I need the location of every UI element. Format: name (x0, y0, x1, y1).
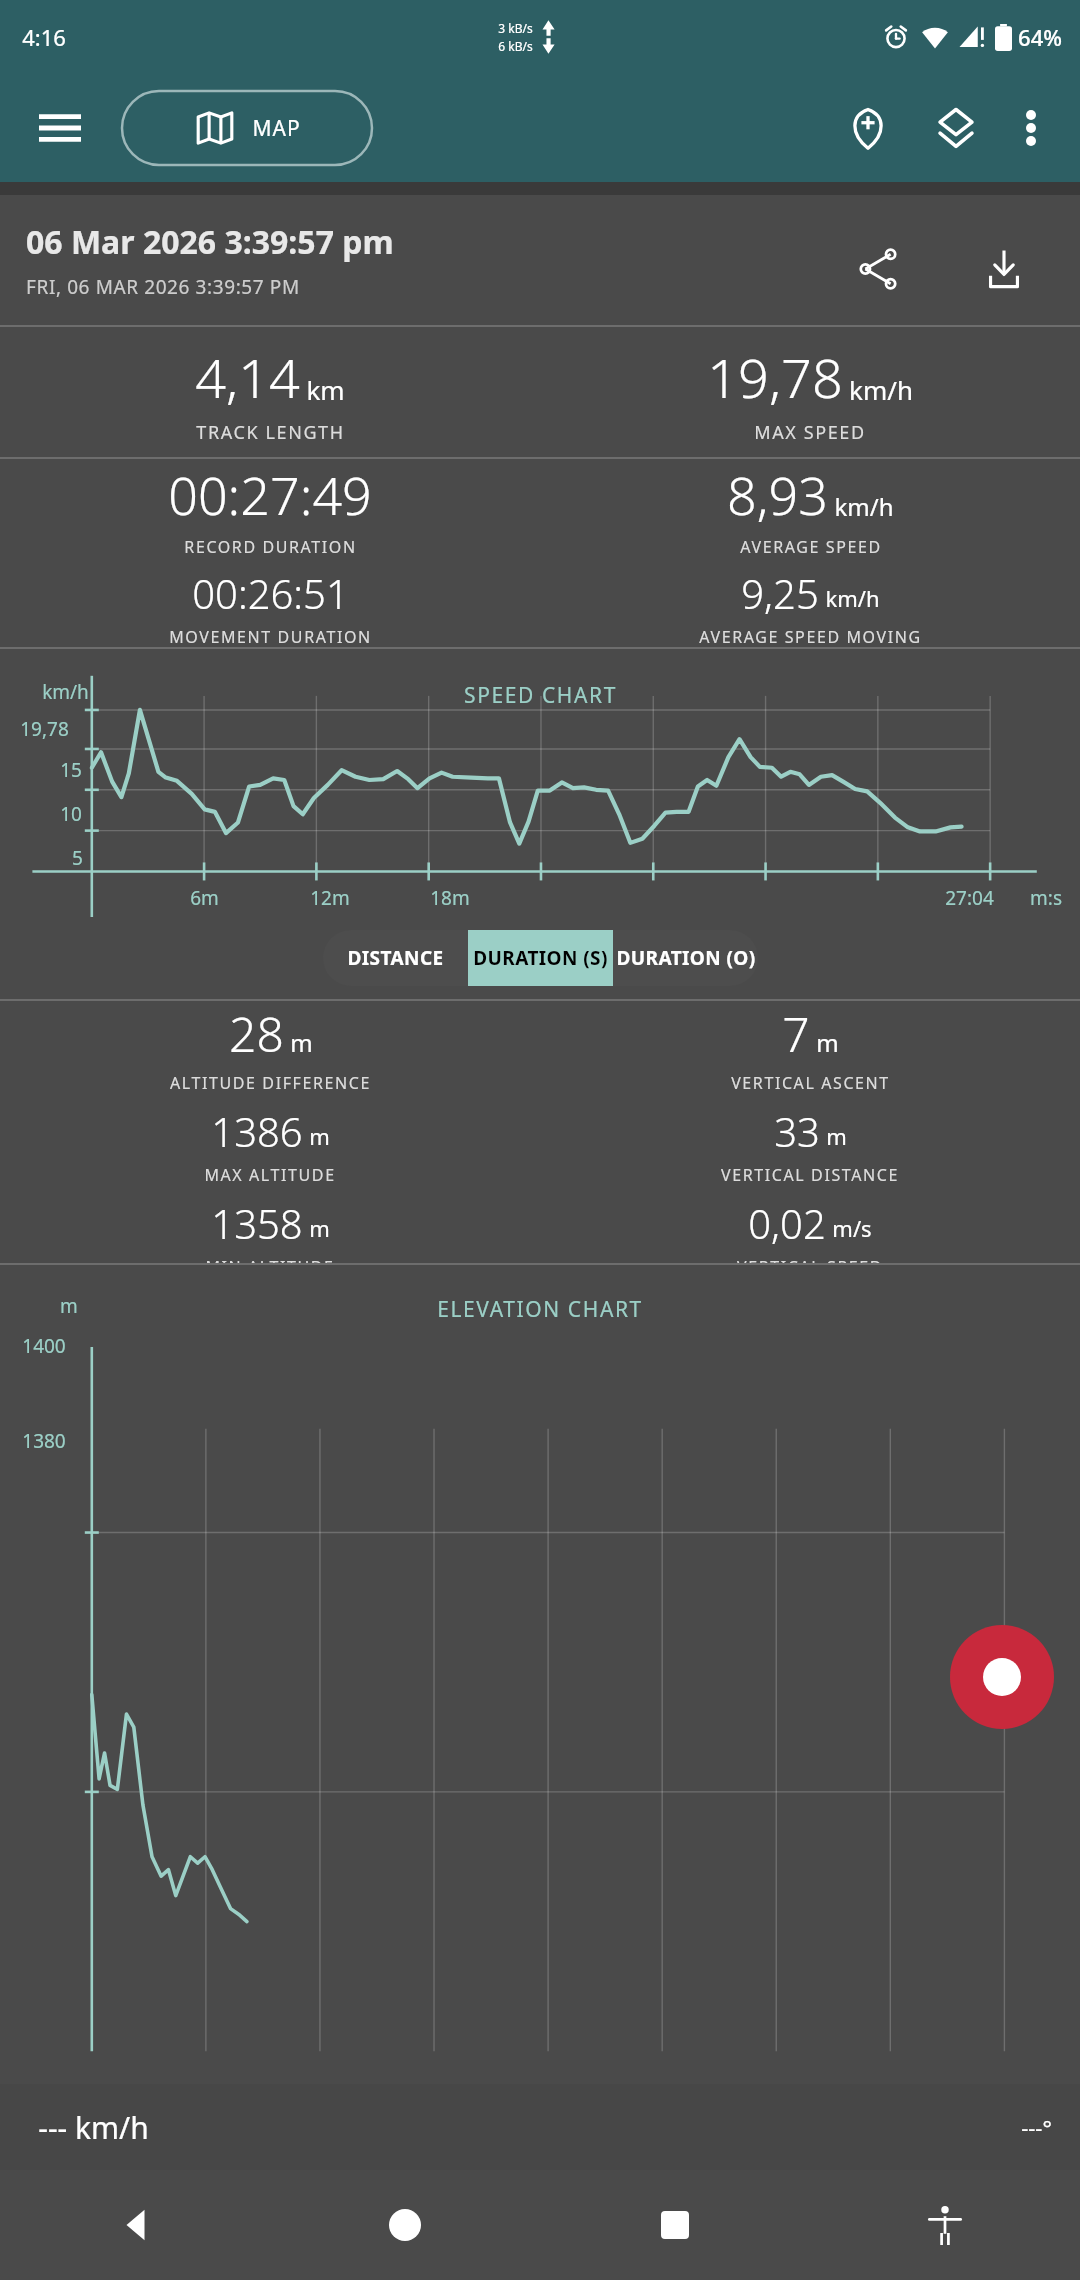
staticText: m (816, 1026, 839, 1059)
staticText: m (826, 1121, 847, 1151)
staticText: 18m (430, 885, 470, 911)
staticText: 9,25 (741, 566, 819, 620)
staticText: MAX ALTITUDE (204, 1164, 336, 1186)
staticText: VERTICAL SPEED (737, 1256, 883, 1263)
staticText: m (290, 1026, 313, 1059)
staticText: DISTANCE (347, 945, 444, 971)
button[interactable]: Home (270, 2170, 540, 2280)
staticText: 06 Mar 2026 3:39:57 pm (26, 220, 394, 264)
staticText: ELEVATION CHART (437, 1295, 643, 1324)
staticText: ---° (1021, 2112, 1052, 2142)
staticText: DURATION (O) (616, 945, 756, 971)
staticText: m (309, 1213, 330, 1243)
staticText: 15 (60, 757, 82, 783)
staticText: 12m (310, 885, 350, 911)
staticText: 7 (782, 1001, 810, 1066)
staticText: m:s (1030, 885, 1062, 911)
staticText: FRI, 06 MAR 2026 3:39:57 PM (26, 274, 300, 300)
staticText: 10 (60, 801, 82, 827)
staticText: 00:27:49 (168, 459, 372, 530)
staticText: 6m (190, 885, 219, 911)
button[interactable]: Recents (540, 2170, 810, 2280)
button[interactable]: Accessibility (810, 2170, 1080, 2280)
staticText: 19,78 (20, 716, 69, 742)
staticText: 1358 (211, 1196, 303, 1250)
button[interactable]: MAP (122, 91, 372, 165)
staticText: AVERAGE SPEED (740, 536, 882, 558)
staticText: RECORD DURATION (184, 536, 357, 558)
staticText: 1386 (211, 1104, 303, 1158)
staticText: km (306, 372, 345, 407)
staticText: 8,93 (727, 459, 828, 530)
staticText: SPEED CHART (464, 681, 617, 710)
staticText: 28 (229, 1001, 284, 1066)
staticText: 1400 (22, 1333, 66, 1359)
button[interactable]: Back (0, 2170, 270, 2280)
staticText: 33 (774, 1104, 820, 1158)
staticText: MOVEMENT DURATION (169, 626, 372, 647)
staticText: AVERAGE SPEED MOVING (699, 626, 922, 647)
staticText: m (309, 1121, 330, 1151)
button[interactable]: Add point (832, 92, 904, 164)
staticText: MAP (252, 114, 301, 143)
staticText: ALTITUDE DIFFERENCE (170, 1072, 371, 1094)
button[interactable]: DISTANCE (323, 930, 468, 986)
staticText: m (60, 1293, 78, 1319)
staticText: 3 kB/s (498, 20, 533, 36)
staticText: --- km/h (38, 2107, 149, 2148)
staticText: TRACK LENGTH (196, 420, 345, 445)
staticText: km/h (42, 679, 89, 705)
button[interactable]: Download (966, 231, 1042, 307)
staticText: MIN ALTITUDE (205, 1256, 335, 1263)
staticText: 00:26:51 (192, 566, 349, 620)
button[interactable]: DURATION (O) (613, 930, 758, 986)
staticText: 5 (72, 845, 83, 871)
staticText: VERTICAL ASCENT (731, 1072, 890, 1094)
staticText: 64% (1018, 22, 1062, 52)
staticText: 4,14 (195, 340, 300, 414)
staticText: m/s (832, 1213, 872, 1243)
staticText: 19,78 (707, 340, 843, 414)
staticText: km/h (825, 583, 880, 613)
staticText: 4:16 (22, 22, 66, 52)
button[interactable]: Menu (32, 100, 88, 156)
button[interactable]: Record (950, 1625, 1054, 1729)
staticText: 27:04 (945, 885, 994, 911)
button[interactable]: More options (1000, 97, 1062, 159)
staticText: 0,02 (748, 1196, 826, 1250)
staticText: km/h (849, 372, 913, 407)
staticText: 1380 (22, 1428, 66, 1454)
staticText: VERTICAL DISTANCE (721, 1164, 899, 1186)
button[interactable]: Layers (920, 92, 992, 164)
button[interactable]: Share (840, 231, 916, 307)
staticText: MAX SPEED (754, 420, 866, 445)
staticText: 6 kB/s (498, 38, 533, 54)
button[interactable]: DURATION (S) (468, 930, 613, 986)
staticText: km/h (834, 490, 894, 523)
staticText: DURATION (S) (473, 945, 608, 971)
